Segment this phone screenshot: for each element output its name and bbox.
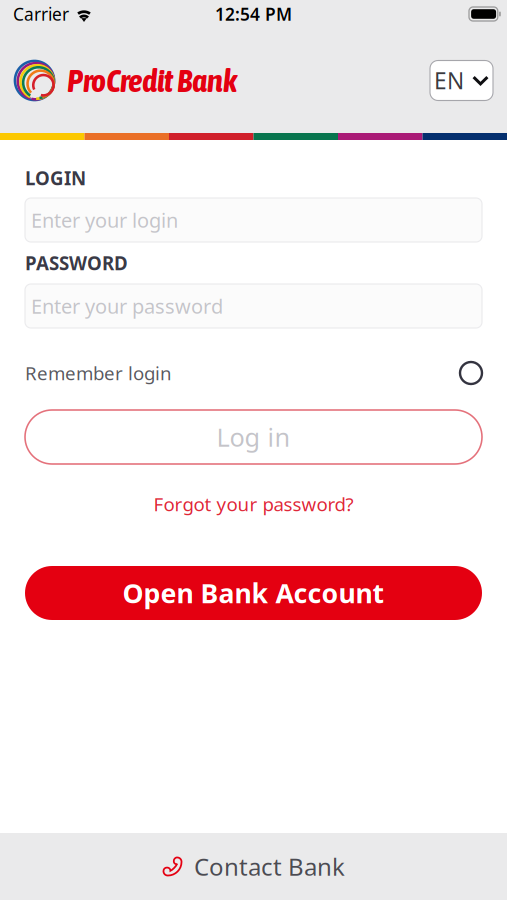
button[interactable]: Contact Bank <box>0 833 507 900</box>
staticText: LOGIN <box>25 166 86 190</box>
staticText: ProCredit Bank <box>67 62 237 99</box>
staticText: Forgot your password? <box>153 492 353 516</box>
staticText: Log in <box>216 420 290 454</box>
button[interactable]: Open Bank Account <box>25 566 482 620</box>
staticText: Contact Bank <box>194 851 345 882</box>
staticText: 12:54 PM <box>215 2 292 25</box>
staticText: PASSWORD <box>25 251 128 275</box>
staticText: Open Bank Account <box>122 575 384 611</box>
staticText: Enter your password <box>31 293 223 319</box>
button[interactable]: Log in <box>25 410 482 464</box>
button[interactable]: EN <box>430 60 493 100</box>
staticText: Remember login <box>25 361 172 385</box>
staticText: Carrier <box>13 2 69 25</box>
staticText: EN <box>434 65 464 95</box>
button[interactable]: Remember login <box>25 354 482 392</box>
staticText: Enter your login <box>31 207 178 233</box>
button[interactable]: Forgot your password? <box>153 491 353 517</box>
